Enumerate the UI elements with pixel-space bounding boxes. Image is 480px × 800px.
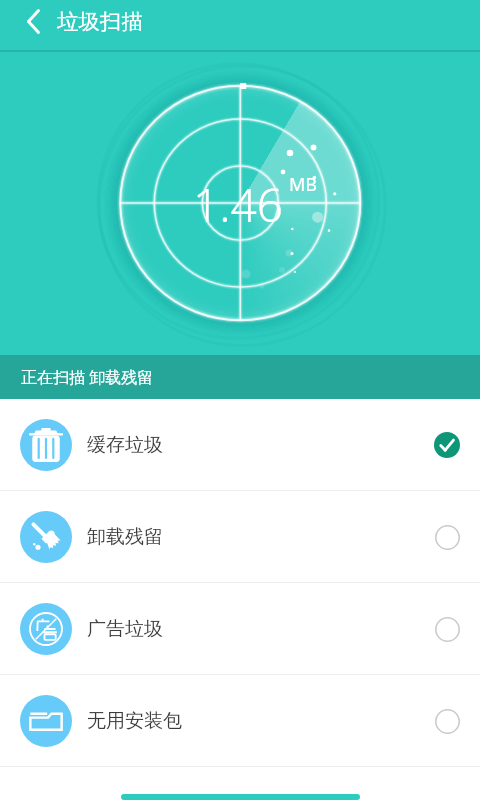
button[interactable]: Back — [0, 0, 54, 43]
button[interactable]: 卸载残留 — [0, 491, 480, 582]
staticText: 缓存垃圾 — [87, 433, 163, 457]
button[interactable]: 缓存垃圾 — [0, 399, 480, 490]
button[interactable]: 广告垃圾 — [0, 583, 480, 674]
button[interactable]: 无用安装包 — [0, 675, 480, 766]
staticText: MB — [289, 172, 318, 197]
staticText: 广告垃圾 — [87, 617, 163, 641]
button[interactable]: 一键清理 — [121, 794, 360, 800]
staticText: 1.46 — [193, 173, 284, 236]
staticText: 垃圾扫描 — [57, 8, 143, 35]
staticText: 正在扫描 卸载残留 — [21, 366, 154, 388]
staticText: 无用安装包 — [87, 709, 182, 733]
staticText: 卸载残留 — [87, 525, 163, 549]
